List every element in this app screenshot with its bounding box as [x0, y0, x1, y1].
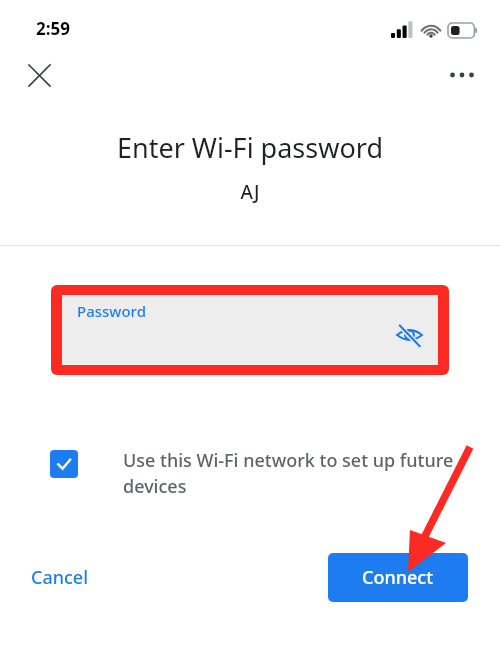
button[interactable]: Show password: [387, 313, 431, 357]
staticText: AJ: [0, 179, 500, 205]
button[interactable]: Use this Wi-Fi network to set up future …: [50, 448, 460, 498]
button[interactable]: Connect: [328, 553, 468, 602]
button[interactable]: More options: [439, 52, 485, 98]
button[interactable]: Close: [16, 52, 62, 98]
staticText: Connect: [362, 565, 434, 590]
staticText: Use this Wi-Fi network to set up future …: [123, 448, 460, 498]
staticText: Password: [77, 301, 146, 321]
staticText: Cancel: [31, 565, 89, 590]
button[interactable]: Password: [62, 295, 438, 365]
button[interactable]: Cancel: [18, 556, 102, 599]
staticText: Enter Wi-Fi password: [0, 129, 500, 166]
staticText: 2:59: [36, 17, 70, 40]
